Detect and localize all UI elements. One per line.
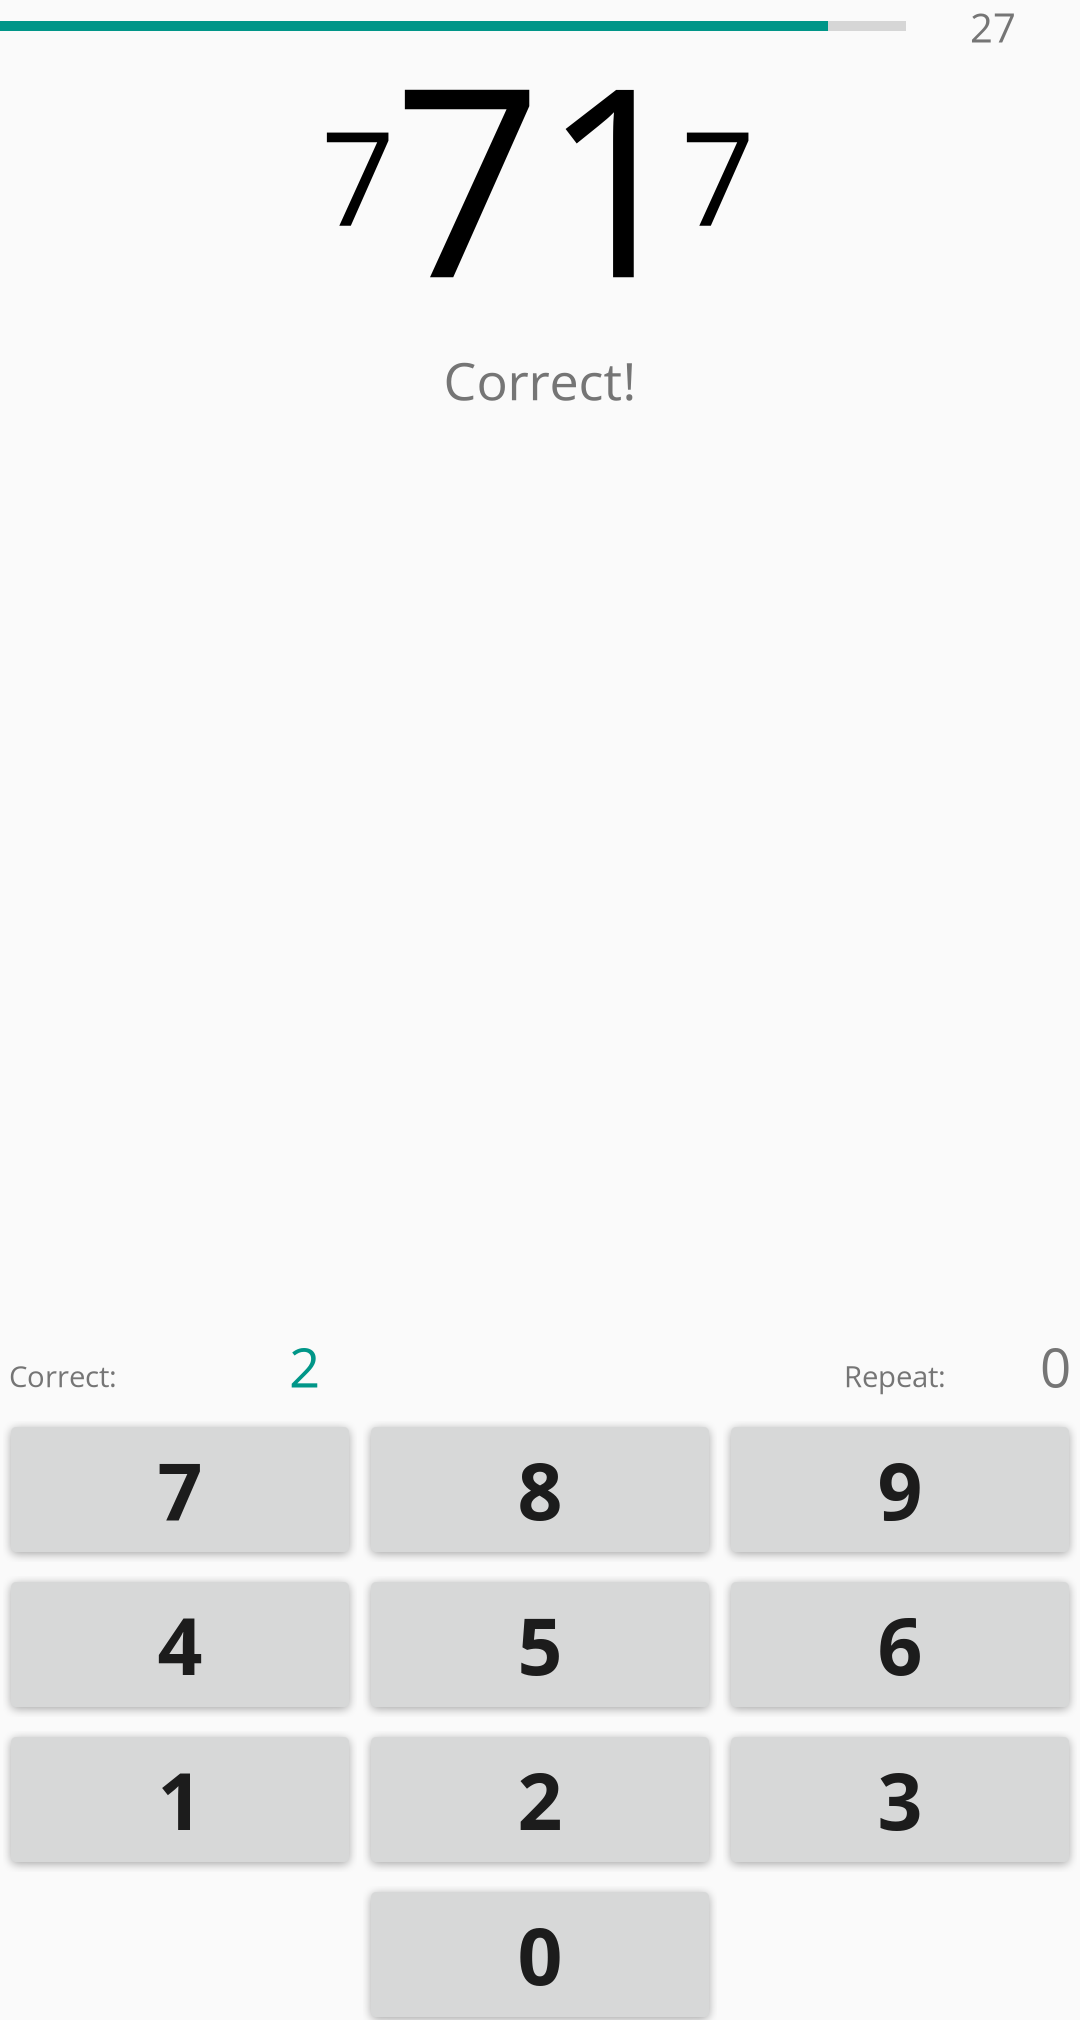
button[interactable]: 5 bbox=[371, 1582, 709, 1707]
staticText: 27 bbox=[970, 0, 1016, 54]
staticText: 2 bbox=[289, 1329, 320, 1403]
staticText: 7 bbox=[681, 87, 755, 263]
staticText: 71 bbox=[393, 0, 691, 354]
button[interactable]: 0 bbox=[371, 1892, 709, 2017]
button[interactable]: 2 bbox=[371, 1737, 709, 1862]
staticText: 0 bbox=[1040, 1329, 1071, 1403]
staticText: 5 bbox=[517, 1591, 562, 1698]
staticText: Correct: bbox=[9, 1356, 117, 1396]
button[interactable]: 4 bbox=[11, 1582, 349, 1707]
staticText: 8 bbox=[517, 1436, 562, 1543]
button[interactable]: 3 bbox=[731, 1737, 1069, 1862]
staticText: 7 bbox=[157, 1436, 202, 1543]
button[interactable]: 8 bbox=[371, 1427, 709, 1552]
staticText: 9 bbox=[877, 1436, 922, 1543]
staticText: 3 bbox=[877, 1746, 922, 1853]
staticText: Correct! bbox=[443, 345, 636, 415]
staticText: 7 bbox=[321, 87, 395, 263]
staticText: 4 bbox=[157, 1591, 202, 1698]
staticText: Repeat: bbox=[844, 1356, 946, 1396]
button[interactable]: 6 bbox=[731, 1582, 1069, 1707]
staticText: 1 bbox=[157, 1746, 202, 1853]
button[interactable]: 1 bbox=[11, 1737, 349, 1862]
staticText: 2 bbox=[517, 1746, 562, 1853]
staticText: 0 bbox=[517, 1901, 562, 2008]
button[interactable]: 9 bbox=[731, 1427, 1069, 1552]
staticText: 6 bbox=[877, 1591, 922, 1698]
button[interactable]: 7 bbox=[11, 1427, 349, 1552]
